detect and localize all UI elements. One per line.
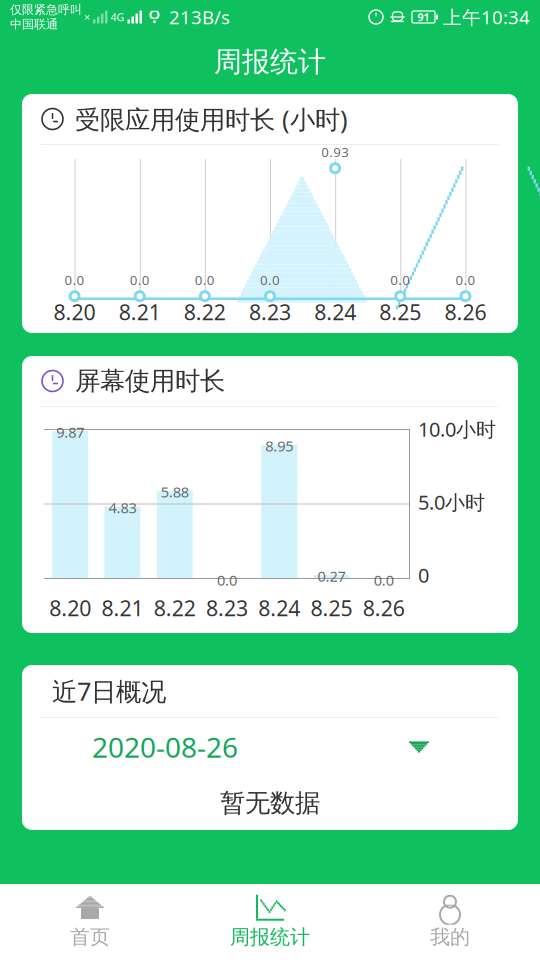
staticText: 4G — [110, 10, 124, 24]
staticText: 0.0 — [65, 271, 85, 289]
staticText: 8.25 — [379, 298, 421, 326]
staticText: 8.26 — [363, 594, 405, 622]
staticText: 8.24 — [258, 594, 300, 622]
staticText: 8.21 — [101, 594, 143, 622]
staticText: 8.20 — [49, 594, 91, 622]
button[interactable]: 2020-08-26 — [22, 718, 518, 776]
staticText: 受限应用使用时长 (小时) — [75, 102, 348, 136]
staticText: 5.88 — [161, 482, 189, 502]
staticText: 暂无数据 — [220, 787, 320, 818]
staticText: 0.27 — [318, 566, 346, 586]
staticText: 0.0 — [217, 570, 237, 590]
staticText: 首页 — [70, 925, 110, 949]
staticText: 近7日概况 — [52, 674, 166, 708]
staticText: 周报统计 — [230, 925, 310, 949]
staticText: 8.95 — [265, 436, 293, 455]
button[interactable]: 我的 — [360, 884, 540, 960]
staticText: 0.0 — [374, 570, 394, 590]
staticText: 8.23 — [249, 298, 291, 326]
staticText: 0.0 — [455, 271, 475, 289]
staticText: 0.0 — [130, 271, 150, 289]
staticText: 8.22 — [184, 298, 226, 326]
staticText: 0.0 — [260, 271, 280, 289]
staticText: 周报统计 — [214, 45, 326, 79]
staticText: 0 — [418, 562, 429, 588]
staticText: 2020-08-26 — [92, 728, 238, 766]
button[interactable]: 周报统计 — [180, 884, 360, 960]
staticText: 仅限紧急呼叫 — [10, 2, 82, 17]
staticText: 8.25 — [311, 594, 353, 622]
staticText: 91 — [417, 10, 429, 24]
staticText: 我的 — [430, 925, 470, 949]
staticText: 8.22 — [154, 594, 196, 622]
staticText: 213B/s — [169, 5, 230, 29]
staticText: 10.0小时 — [418, 416, 496, 442]
staticText: 8.20 — [54, 298, 96, 326]
staticText: 0.0 — [195, 271, 215, 289]
staticText: 8.26 — [444, 298, 486, 326]
staticText: 中国联通 — [10, 17, 58, 32]
staticText: 0.0 — [390, 271, 410, 289]
staticText: 9.87 — [56, 422, 84, 442]
staticText: 屏幕使用时长 — [75, 365, 225, 396]
staticText: 8.21 — [119, 298, 161, 326]
staticText: 8.23 — [206, 594, 248, 622]
staticText: 8.24 — [314, 298, 356, 326]
staticText: 上午10:34 — [443, 5, 530, 29]
staticText: 5.0小时 — [418, 489, 485, 515]
staticText: 4.83 — [108, 498, 136, 517]
button[interactable]: 首页 — [0, 884, 180, 960]
staticText: × — [84, 10, 90, 24]
staticText: 0.93 — [321, 143, 349, 161]
